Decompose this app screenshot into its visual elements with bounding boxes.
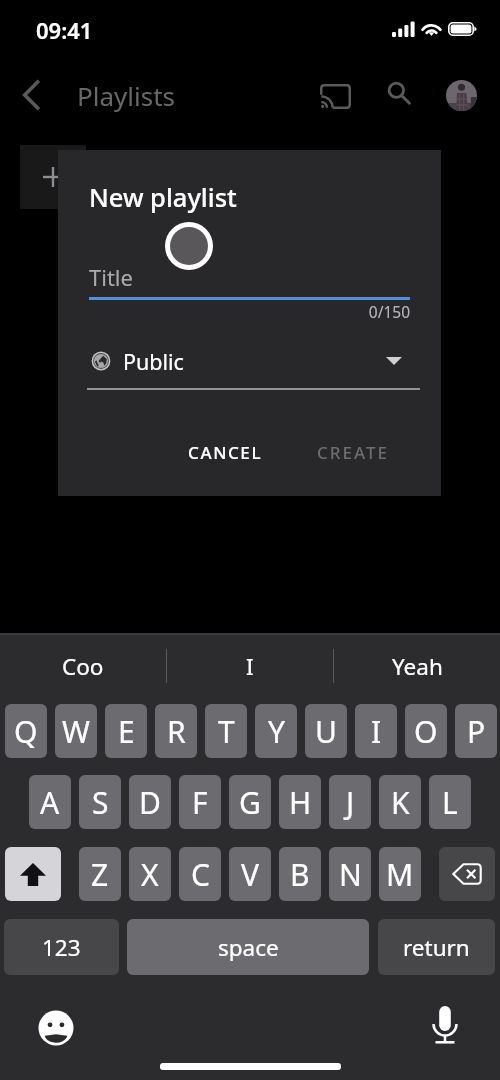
- button[interactable]: F: [179, 775, 221, 829]
- staticText: G: [239, 782, 261, 823]
- staticText: D: [139, 782, 161, 823]
- button[interactable]: Search: [379, 74, 421, 116]
- button[interactable]: L: [429, 775, 471, 829]
- button[interactable]: New playlist: [20, 145, 86, 209]
- staticText: Yeah: [392, 651, 443, 682]
- staticText: T: [218, 711, 235, 752]
- staticText: S: [92, 782, 109, 823]
- button[interactable]: H: [279, 775, 321, 829]
- button[interactable]: V: [229, 847, 271, 901]
- staticText: 123: [42, 932, 81, 963]
- button[interactable]: Coo: [0, 635, 166, 697]
- staticText: H: [289, 782, 312, 823]
- button[interactable]: Q: [5, 704, 47, 758]
- staticText: K: [391, 782, 410, 823]
- staticText: V: [241, 854, 259, 895]
- staticText: B: [290, 854, 310, 895]
- staticText: P: [467, 711, 486, 752]
- staticText: 0/150: [338, 301, 410, 322]
- button[interactable]: I: [167, 635, 333, 697]
- staticText: Q: [14, 711, 38, 752]
- staticText: I: [246, 651, 254, 682]
- button[interactable]: J: [329, 775, 371, 829]
- staticText: Playlists: [77, 78, 175, 113]
- button[interactable]: O: [405, 704, 447, 758]
- button[interactable]: A: [29, 775, 71, 829]
- button[interactable]: U: [305, 704, 347, 758]
- button[interactable]: Cast: [314, 75, 356, 117]
- staticText: M: [386, 854, 414, 895]
- button[interactable]: Public: [91, 340, 402, 382]
- staticText: Public: [123, 347, 184, 376]
- button[interactable]: space: [127, 919, 369, 975]
- staticText: Coo: [62, 651, 104, 682]
- button[interactable]: T: [205, 704, 247, 758]
- button[interactable]: B: [279, 847, 321, 901]
- staticText: return: [403, 932, 470, 963]
- staticText: CREATE: [317, 441, 389, 464]
- button[interactable]: S: [79, 775, 121, 829]
- button[interactable]: Backspace: [439, 847, 495, 901]
- button[interactable]: 123: [4, 919, 119, 975]
- staticText: Title: [89, 262, 133, 292]
- button[interactable]: Back: [11, 75, 51, 115]
- staticText: CANCEL: [188, 441, 263, 464]
- button[interactable]: G: [229, 775, 271, 829]
- button[interactable]: R: [155, 704, 197, 758]
- staticText: O: [414, 711, 438, 752]
- staticText: X: [141, 854, 159, 895]
- button[interactable]: M: [379, 847, 421, 901]
- staticText: R: [167, 711, 186, 752]
- button[interactable]: P: [455, 704, 497, 758]
- staticText: A: [40, 782, 60, 823]
- button[interactable]: Yeah: [334, 635, 500, 697]
- button[interactable]: CANCEL: [150, 431, 301, 473]
- button[interactable]: return: [378, 919, 495, 975]
- button[interactable]: K: [379, 775, 421, 829]
- button[interactable]: C: [179, 847, 221, 901]
- button[interactable]: W: [55, 704, 97, 758]
- staticText: New playlist: [89, 180, 237, 215]
- staticText: J: [346, 782, 355, 823]
- button[interactable]: I: [355, 704, 397, 758]
- staticText: space: [218, 932, 279, 963]
- button[interactable]: Y: [255, 704, 297, 758]
- staticText: 09:41: [36, 15, 93, 45]
- button[interactable]: CREATE: [279, 431, 426, 473]
- staticText: F: [192, 782, 208, 823]
- button[interactable]: Z: [79, 847, 121, 901]
- staticText: Y: [268, 711, 285, 752]
- staticText: I: [371, 711, 382, 752]
- staticText: E: [118, 711, 135, 752]
- staticText: C: [191, 854, 210, 895]
- button[interactable]: Emoji keyboard: [37, 1009, 75, 1047]
- staticText: L: [442, 782, 458, 823]
- staticText: N: [339, 854, 362, 895]
- staticText: U: [315, 711, 337, 752]
- staticText: W: [62, 711, 90, 752]
- button[interactable]: E: [105, 704, 147, 758]
- button[interactable]: Voice input: [426, 1006, 464, 1044]
- button[interactable]: N: [329, 847, 371, 901]
- staticText: Z: [91, 854, 109, 895]
- button[interactable]: Account: [446, 80, 477, 111]
- button[interactable]: D: [129, 775, 171, 829]
- button[interactable]: Shift: [5, 847, 61, 901]
- button[interactable]: X: [129, 847, 171, 901]
